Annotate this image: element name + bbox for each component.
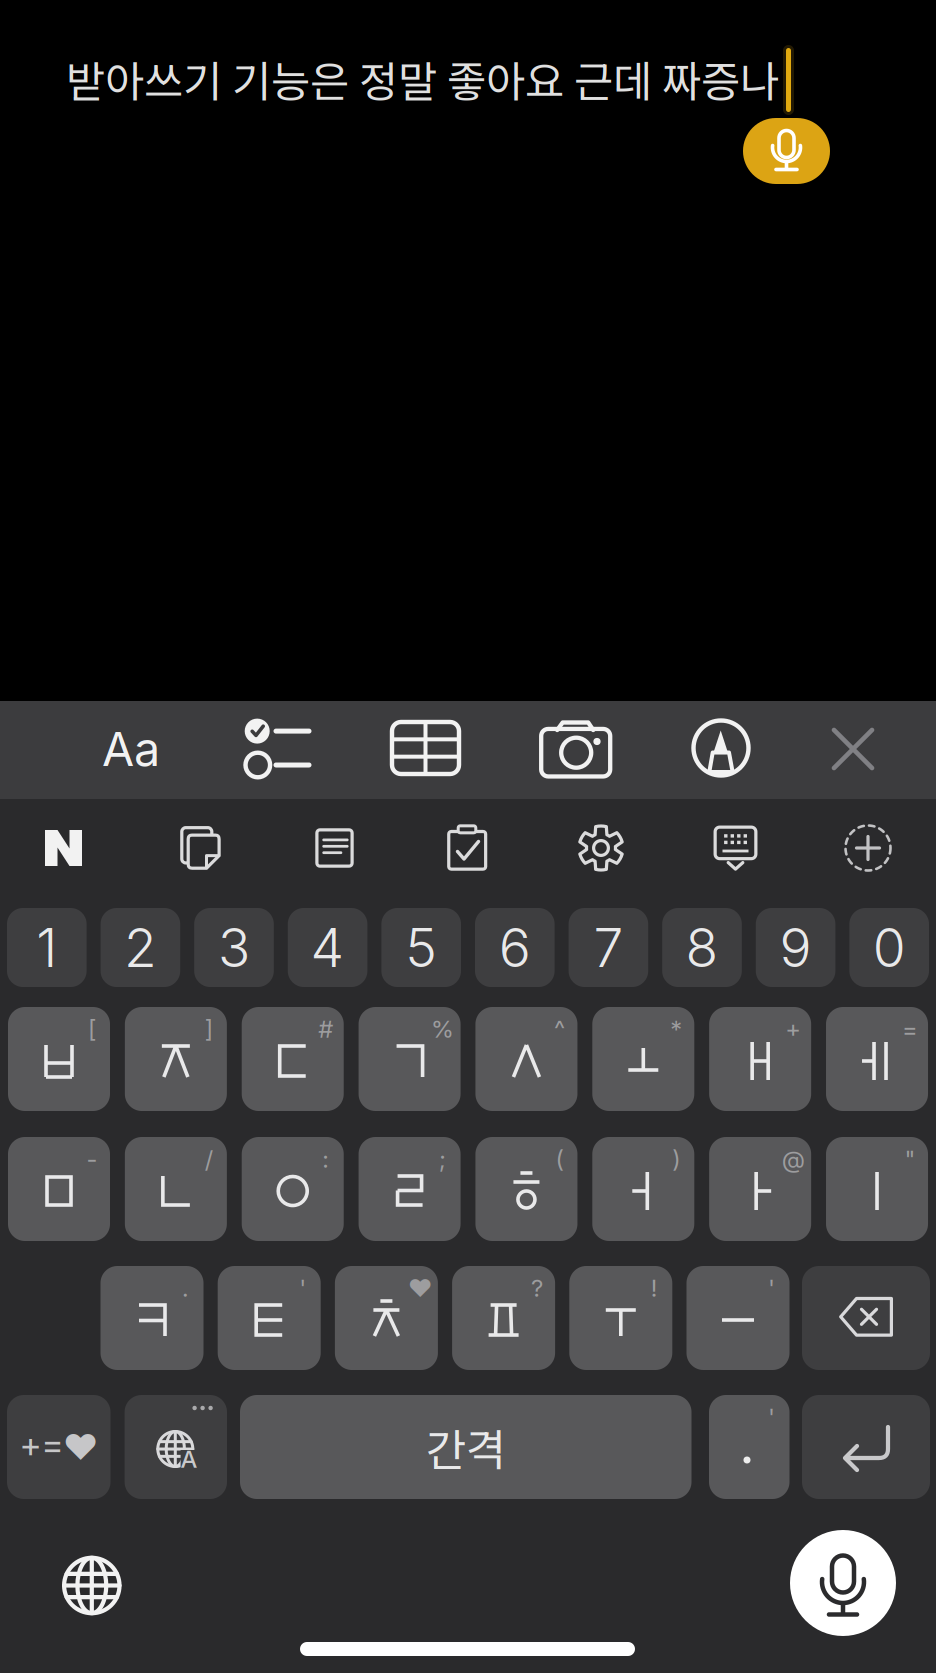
staticText: 1 [36,915,57,980]
staticText: = [902,1014,918,1043]
button[interactable]: @ [709,1137,811,1241]
staticText: / [205,1144,213,1173]
button[interactable]: Delete [802,1266,930,1370]
button[interactable]: 7 [569,908,648,987]
button[interactable]: Camera [521,700,631,796]
button[interactable]: % [359,1007,461,1111]
staticText: ] [205,1014,213,1043]
staticText: % [431,1014,454,1043]
button[interactable]: 0 [849,908,929,987]
button[interactable]: ( [475,1137,577,1241]
staticText: : [322,1144,329,1173]
staticText: 간격 [426,1415,506,1479]
button[interactable]: 9 [756,908,835,987]
staticText: ) [672,1144,680,1173]
button[interactable]: Copy [155,803,245,893]
button[interactable]: Markup [666,700,776,796]
staticText: A [181,1444,198,1473]
button[interactable]: Dictation [743,118,830,184]
staticText: ' [768,1273,775,1302]
staticText: 9 [780,915,812,980]
staticText: ! [651,1273,658,1302]
staticText: 0 [873,915,906,980]
staticText: ( [555,1144,563,1173]
button[interactable]: Settings [556,803,646,893]
button[interactable]: 3 [194,908,274,987]
button[interactable]: ! [569,1266,672,1370]
staticText: - [86,1144,97,1173]
staticText: 7 [593,915,623,980]
button[interactable]: ^ [475,1007,577,1111]
button[interactable]: 2 [101,908,180,987]
button[interactable]: Checklist [222,700,332,796]
staticText: * [670,1014,682,1043]
button[interactable]: ? [452,1266,555,1370]
button[interactable]: = [826,1007,928,1111]
button[interactable]: 6 [475,908,555,987]
button[interactable]: ' [218,1266,321,1370]
button[interactable]: Return [802,1395,930,1499]
button[interactable]: Keyboard [690,803,780,893]
staticText: ' [299,1273,306,1302]
staticText: [ [88,1014,96,1043]
staticText: 5 [405,915,437,980]
button[interactable]: 8 [662,908,742,987]
staticText: # [318,1014,333,1043]
button[interactable]: +=♥ [7,1395,110,1499]
staticText: ^ [554,1014,565,1043]
button[interactable]: - [8,1137,110,1241]
staticText: +=♥ [19,1426,98,1468]
staticText: 2 [124,915,157,980]
staticText: 3 [218,915,250,980]
staticText: + [785,1014,801,1043]
button[interactable]: Dictation [790,1530,896,1636]
staticText: . [182,1273,189,1302]
staticText: " [904,1144,915,1173]
button[interactable]: Close [803,701,903,797]
button[interactable]: . [100,1266,203,1370]
button[interactable]: ] [125,1007,227,1111]
button[interactable]: ' [686,1266,789,1370]
staticText: 8 [685,915,718,980]
staticText: @ [782,1144,805,1173]
button[interactable]: Text memo [289,803,379,893]
button[interactable]: Table [370,700,480,796]
staticText: ' [768,1402,775,1431]
staticText: 받아쓰기 기능은 정말 좋아요 근데 짜증나 [66,48,779,110]
button[interactable]: Next keyboard [47,1540,137,1630]
button[interactable]: 4 [288,908,367,987]
button[interactable]: Switch language [125,1395,227,1499]
staticText: Aa [102,721,160,777]
button[interactable]: Clipboard [421,803,511,893]
button[interactable] [709,1395,789,1499]
button[interactable]: Format [76,701,186,797]
button[interactable]: : [242,1137,344,1241]
button[interactable]: * [592,1007,694,1111]
button[interactable]: / [125,1137,227,1241]
button[interactable]: [ [8,1007,110,1111]
button[interactable]: ; [359,1137,461,1241]
button[interactable]: 간격 [240,1395,691,1499]
button[interactable]: " [826,1137,928,1241]
staticText: ; [439,1144,446,1173]
staticText: ♥ [408,1273,432,1302]
button[interactable]: 1 [7,908,87,987]
button[interactable]: 5 [381,908,461,987]
button[interactable]: ) [592,1137,694,1241]
button[interactable]: Add [823,803,913,893]
button[interactable]: ♥ [335,1266,438,1370]
staticText: 4 [311,915,345,980]
staticText: 6 [499,915,531,980]
button[interactable]: # [242,1007,344,1111]
staticText: ? [531,1273,543,1302]
button[interactable]: Naver SmartBoard [18,803,108,893]
button[interactable]: + [709,1007,811,1111]
